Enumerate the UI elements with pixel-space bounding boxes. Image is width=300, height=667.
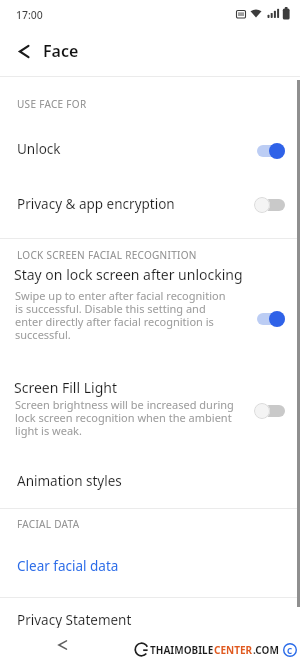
staticText: LOCK SCREEN FACIAL RECOGNITION [17,248,197,262]
staticText: Swipe up to enter after facial recogniti… [15,288,226,342]
staticText: Screen Fill Light [14,378,117,397]
staticText: Face [43,40,79,62]
staticText: Stay on lock screen after unlocking [14,265,243,284]
staticText: Privacy & app encryption [17,195,175,213]
button[interactable]: Unlock [0,120,300,180]
staticText: C [287,645,293,656]
staticText: 17:00 [16,8,43,22]
staticText: THAIMOBILE [150,643,214,657]
button[interactable]: Clear facial data [0,540,300,586]
staticText: FACIAL DATA [17,517,80,531]
staticText: Screen brightness will be increased duri… [15,397,234,438]
staticText: Animation styles [17,472,122,490]
button[interactable]: Stay on lock screen after unlocking [0,262,300,372]
staticText: .COM [253,643,279,657]
staticText: CENTER [214,643,253,657]
staticText: USE FACE FOR [17,97,87,111]
button[interactable]: Privacy & app encryption [0,180,300,232]
staticText: Unlock [17,140,61,158]
button[interactable]: Screen Fill Light [0,375,300,447]
button[interactable]: Animation styles [0,458,300,503]
staticText: Clear facial data [17,557,119,575]
button[interactable]: Privacy Statement [0,598,300,628]
button[interactable] [11,38,37,64]
staticText: Privacy Statement [17,611,132,628]
button[interactable] [50,634,74,656]
